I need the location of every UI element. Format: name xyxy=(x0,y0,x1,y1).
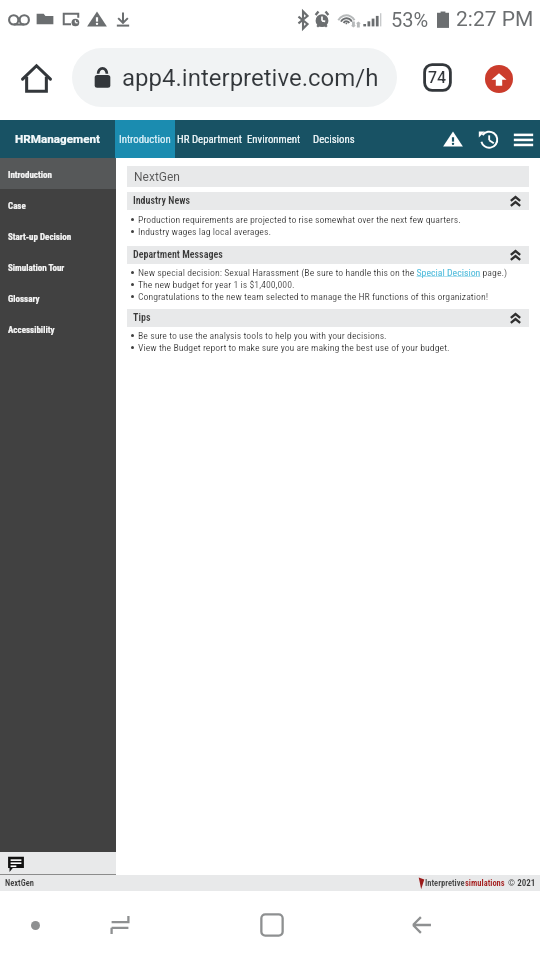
button[interactable]: Switch apps xyxy=(98,903,142,947)
button[interactable]: Home xyxy=(250,903,294,947)
staticText: The new budget for year 1 is $1,400,000. xyxy=(138,279,295,290)
staticText: HR Department xyxy=(177,133,242,146)
staticText: NextGen xyxy=(134,170,180,184)
button[interactable]: Assistant xyxy=(13,903,57,947)
staticText: © 2021 xyxy=(508,878,536,889)
button[interactable]: Menu xyxy=(506,120,540,158)
staticText: Production requirements are projected to… xyxy=(138,214,461,225)
staticText: Introduction xyxy=(8,170,52,181)
staticText: View the Budget report to make sure you … xyxy=(138,342,450,353)
staticText: Industry wages lag local averages. xyxy=(138,226,271,237)
button[interactable]: Introduction xyxy=(0,158,116,189)
staticText: Be sure to use the analysis tools to hel… xyxy=(138,330,387,341)
button[interactable]: Update available xyxy=(476,56,521,101)
button[interactable]: Case xyxy=(0,189,116,220)
staticText: Interpretive xyxy=(425,878,465,888)
button[interactable] xyxy=(245,120,307,158)
staticText: NextGen xyxy=(5,878,34,888)
staticText: Start-up Decision xyxy=(8,232,72,243)
button[interactable]: Back xyxy=(400,903,444,947)
button[interactable]: Alerts xyxy=(436,120,470,158)
staticText: 2:27 PM xyxy=(456,7,534,32)
staticText: Simulation Tour xyxy=(8,263,65,274)
staticText: Decisions xyxy=(313,133,355,146)
staticText: Glossary xyxy=(8,294,40,305)
staticText: Industry News xyxy=(133,195,191,207)
button[interactable]: Home xyxy=(16,58,56,98)
staticText: 74 xyxy=(428,68,447,87)
button[interactable]: app4.interpretive.com/h xyxy=(72,48,397,107)
button[interactable] xyxy=(307,120,361,158)
button[interactable] xyxy=(175,120,245,158)
button[interactable]: Introduction xyxy=(115,120,175,158)
staticText: New special decision: Sexual Harassment … xyxy=(138,267,508,278)
button[interactable]: Glossary xyxy=(0,282,116,313)
staticText: 53% xyxy=(391,8,429,31)
button[interactable]: Accessibility xyxy=(0,313,116,344)
staticText: Accessibility xyxy=(8,325,55,336)
button[interactable]: Simulation Tour xyxy=(0,251,116,282)
button[interactable]: Start-up Decision xyxy=(0,220,116,251)
staticText: Case xyxy=(8,201,26,212)
button[interactable]: Tabs xyxy=(415,55,460,100)
button[interactable]: Chat xyxy=(0,852,116,875)
staticText: simulations xyxy=(465,878,505,888)
button[interactable]: History xyxy=(471,120,505,158)
staticText: Department Messages xyxy=(133,249,223,261)
staticText: Congratulations to the new team selected… xyxy=(138,291,489,302)
staticText: app4.interpretive.com/h xyxy=(122,64,379,92)
button[interactable]: Tips xyxy=(127,309,529,327)
staticText: Introduction xyxy=(119,133,171,146)
staticText: Tips xyxy=(133,312,151,324)
button[interactable]: Department Messages xyxy=(127,246,529,264)
button[interactable]: Industry News xyxy=(127,192,529,210)
staticText: Environment xyxy=(247,133,301,146)
button[interactable]: HRManagement xyxy=(0,120,115,158)
staticText: HRManagement xyxy=(15,132,100,146)
